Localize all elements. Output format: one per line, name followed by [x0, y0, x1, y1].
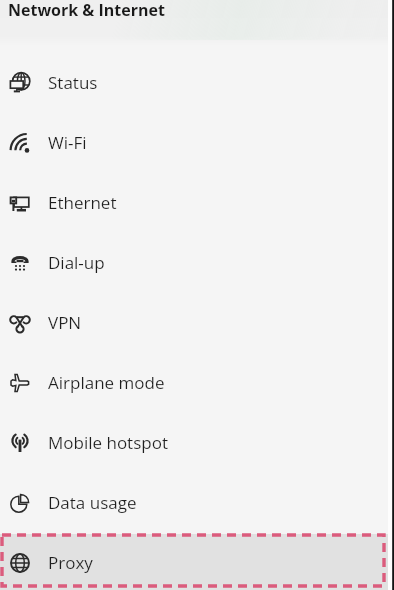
- staticText: Status: [48, 71, 98, 94]
- button[interactable]: Ethernet: [0, 172, 394, 232]
- staticText: Data usage: [48, 491, 137, 514]
- button[interactable]: VPN: [0, 292, 394, 352]
- staticText: Airplane mode: [48, 371, 165, 394]
- button[interactable]: Mobile hotspot: [0, 412, 394, 472]
- staticText: Dial-up: [48, 251, 105, 274]
- button[interactable]: Status: [0, 52, 394, 112]
- staticText: Wi-Fi: [48, 131, 87, 154]
- staticText: Ethernet: [48, 191, 117, 214]
- button[interactable]: Airplane mode: [0, 352, 394, 412]
- staticText: Proxy: [48, 551, 93, 574]
- staticText: Mobile hotspot: [48, 431, 168, 454]
- button[interactable]: Dial-up: [0, 232, 394, 292]
- staticText: VPN: [48, 311, 82, 334]
- staticText: Network & Internet: [8, 0, 165, 21]
- button[interactable]: Data usage: [0, 472, 394, 532]
- button[interactable]: Wi-Fi: [0, 112, 394, 172]
- button[interactable]: Proxy: [0, 534, 388, 590]
